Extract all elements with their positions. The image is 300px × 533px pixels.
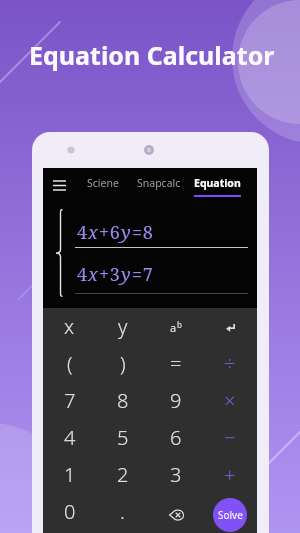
button[interactable]: Snapcalc [133, 176, 185, 197]
staticText: +6 [99, 220, 121, 245]
staticText: 4 [77, 220, 88, 245]
staticText: y [121, 262, 132, 287]
button[interactable]: 4 [43, 419, 96, 456]
staticText: 1 [64, 461, 76, 488]
button[interactable]: Solve [213, 498, 247, 532]
staticText: Sciene [87, 176, 119, 190]
staticText: ( [67, 350, 73, 377]
button[interactable]: ÷ [203, 345, 257, 382]
staticText: + [224, 461, 236, 488]
staticText: ) [120, 350, 126, 377]
staticText: 5 [117, 424, 129, 451]
button[interactable]: Menu [46, 172, 72, 198]
staticText: b [177, 319, 182, 330]
staticText: Snapcalc [137, 176, 181, 190]
staticText: =7 [132, 262, 154, 287]
staticText: 8 [117, 387, 129, 414]
staticText: 3 [170, 461, 182, 488]
button[interactable]: Power [149, 308, 203, 345]
button[interactable]: . [96, 493, 149, 530]
staticText: 7 [64, 387, 76, 414]
staticText: Solve [218, 508, 243, 522]
staticText: 2 [117, 461, 129, 488]
staticText: Equation [194, 176, 241, 190]
staticText: 6 [170, 424, 182, 451]
staticText: x [64, 313, 75, 340]
button[interactable]: 2 [96, 456, 149, 493]
button[interactable]: Backspace [149, 493, 203, 530]
button[interactable]: ) [96, 345, 149, 382]
button[interactable]: x [43, 308, 96, 345]
button[interactable]: × [203, 382, 257, 419]
staticText: ÷ [224, 350, 236, 377]
staticText: 4 [64, 424, 76, 451]
staticText: . [120, 498, 125, 525]
staticText: a [170, 320, 177, 335]
button[interactable]: y [96, 308, 149, 345]
button[interactable]: 7 [43, 382, 96, 419]
button[interactable]: 9 [149, 382, 203, 419]
staticText: y [118, 313, 128, 340]
staticText: =8 [132, 220, 154, 245]
button[interactable]: − [203, 419, 257, 456]
staticText: 0 [64, 498, 76, 525]
button[interactable]: 8 [96, 382, 149, 419]
staticText: Equation Calculator [29, 38, 275, 72]
button[interactable]: 1 [43, 456, 96, 493]
button[interactable]: Sciene [83, 176, 123, 197]
button[interactable]: = [149, 345, 203, 382]
staticText: = [170, 350, 182, 377]
staticText: 9 [170, 387, 182, 414]
staticText: +3 [99, 262, 121, 287]
staticText: 4 [77, 262, 88, 287]
staticText: x [88, 262, 99, 287]
button[interactable]: ( [43, 345, 96, 382]
button[interactable]: 5 [96, 419, 149, 456]
button[interactable]: 0 [43, 493, 96, 530]
staticText: − [224, 424, 236, 451]
staticText: x [88, 220, 99, 245]
staticText: × [224, 387, 236, 414]
button[interactable]: Equation [190, 176, 245, 197]
button[interactable]: Enter [203, 308, 257, 345]
button[interactable]: 3 [149, 456, 203, 493]
button[interactable]: Solve [203, 493, 257, 530]
staticText: y [121, 220, 132, 245]
button[interactable]: + [203, 456, 257, 493]
button[interactable]: 6 [149, 419, 203, 456]
